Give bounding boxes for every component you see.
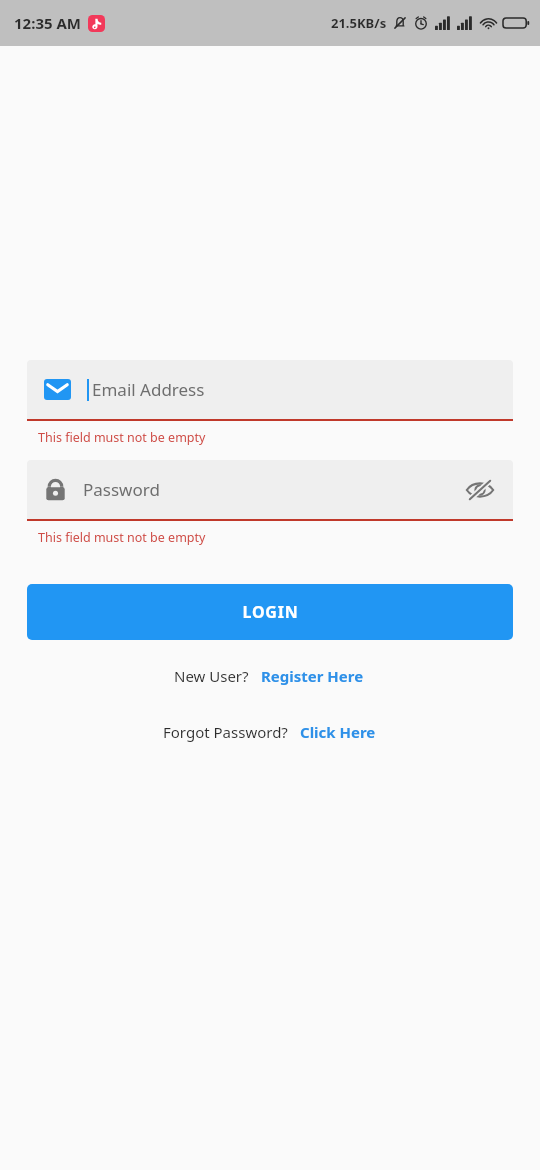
staticText: This field must not be empty [38,529,206,546]
staticText: Forgot Password? [163,722,288,742]
button[interactable]: Register Here [259,664,366,688]
button[interactable]: Toggle password visibility [461,471,499,509]
staticText: 21.5KB/s [331,14,387,32]
staticText: New User? [174,666,249,686]
staticText: Email Address [92,378,205,401]
button[interactable]: LOGIN [27,584,513,640]
staticText: This field must not be empty [38,429,206,446]
staticText: 12:35 AM [14,13,81,33]
staticText: LOGIN [242,601,299,623]
staticText: Password [83,478,160,501]
button[interactable]: Click Here [298,720,378,744]
staticText: Click Here [300,722,376,742]
button[interactable]: Email Address [27,360,513,421]
button[interactable]: Password [27,460,513,521]
staticText: Register Here [261,666,364,686]
